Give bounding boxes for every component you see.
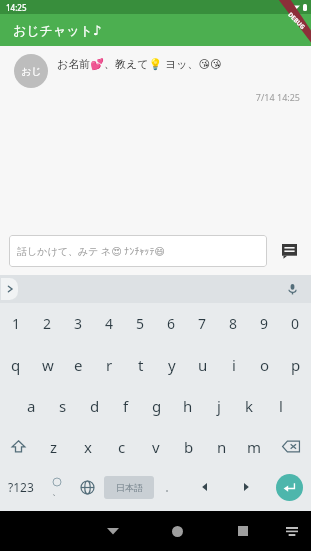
button[interactable]: s	[47, 385, 79, 426]
button[interactable]: Period	[154, 467, 184, 507]
button[interactable]: Keyboard	[275, 511, 309, 551]
staticText: DEBUG	[286, 11, 307, 31]
staticText: o	[260, 355, 270, 375]
button[interactable]: p	[280, 344, 311, 385]
button[interactable]: m	[238, 426, 271, 467]
staticText: 話しかけて、みテ ネ😍 ﾅﾝﾁｬｯﾃ😄	[17, 244, 165, 258]
staticText: 2	[43, 314, 52, 333]
staticText: b	[184, 437, 194, 457]
staticText: d	[90, 396, 100, 416]
button[interactable]: 8	[218, 303, 249, 344]
button[interactable]: x	[71, 426, 105, 467]
button[interactable]: Backspace	[271, 426, 311, 467]
staticText: r	[106, 355, 113, 375]
staticText: y	[168, 355, 176, 375]
staticText: e	[74, 355, 83, 375]
staticText: p	[291, 355, 301, 375]
button[interactable]: Voice input	[283, 280, 301, 298]
button[interactable]: e	[63, 344, 94, 385]
button[interactable]: j	[203, 385, 234, 426]
staticText: 。	[165, 482, 174, 493]
button[interactable]: Back	[80, 511, 145, 551]
staticText: ?123	[8, 479, 34, 495]
staticText: 1	[12, 314, 21, 333]
button[interactable]: l	[265, 385, 296, 426]
button[interactable]: 0	[280, 303, 311, 344]
button[interactable]: o	[249, 344, 280, 385]
button[interactable]: f	[110, 385, 141, 426]
staticText: g	[152, 396, 162, 416]
button[interactable]: 3	[63, 303, 94, 344]
button[interactable]: a	[15, 385, 47, 426]
button[interactable]: 5	[125, 303, 156, 344]
button[interactable]: g	[141, 385, 172, 426]
button[interactable]: w	[32, 344, 63, 385]
staticText: 0	[291, 314, 300, 333]
staticText: 6	[167, 314, 176, 333]
staticText: f	[123, 396, 129, 416]
button[interactable]: Shift	[0, 426, 37, 467]
staticText: 3	[74, 314, 83, 333]
button[interactable]: Send message	[276, 238, 302, 264]
button[interactable]: Home	[145, 511, 210, 551]
button[interactable]: 6	[156, 303, 187, 344]
button[interactable]: 話しかけて、みテ ネ😍 ﾅﾝﾁｬｯﾃ😄	[9, 235, 267, 267]
staticText: u	[198, 355, 208, 375]
staticText: t	[138, 355, 144, 375]
staticText: 5	[136, 314, 145, 333]
staticText: 7/14 14:25	[0, 91, 300, 103]
staticText: m	[247, 437, 262, 457]
button[interactable]: c	[105, 426, 139, 467]
button[interactable]: i	[218, 344, 249, 385]
button[interactable]: Change language	[70, 467, 104, 507]
staticText: お名前💕、教えて💡 ヨッ、😘😘	[57, 56, 222, 71]
button[interactable]: v	[139, 426, 172, 467]
button[interactable]: z	[37, 426, 71, 467]
button[interactable]: h	[172, 385, 203, 426]
staticText: 14:25	[6, 2, 27, 13]
staticText: s	[59, 396, 67, 416]
button[interactable]: 2	[32, 303, 63, 344]
button[interactable]: n	[205, 426, 238, 467]
button[interactable]: Move cursor right	[225, 467, 267, 507]
staticText: 4	[105, 314, 114, 333]
button[interactable]: Move cursor left	[184, 467, 225, 507]
staticText: 、	[52, 486, 61, 497]
staticText: a	[27, 396, 36, 416]
staticText: w	[42, 355, 54, 375]
button[interactable]: 1	[0, 303, 32, 344]
button[interactable]: 4	[94, 303, 125, 344]
staticText: x	[84, 437, 92, 457]
button[interactable]: t	[125, 344, 156, 385]
button[interactable]: Enter	[267, 467, 311, 507]
staticText: z	[50, 437, 58, 457]
button[interactable]: k	[234, 385, 265, 426]
staticText: 8	[229, 314, 238, 333]
staticText: h	[183, 396, 193, 416]
staticText: c	[118, 437, 126, 457]
button[interactable]: Emoji and comma	[42, 467, 70, 507]
button[interactable]: d	[79, 385, 110, 426]
button[interactable]: 7	[187, 303, 218, 344]
button[interactable]: Expand suggestions	[1, 278, 18, 300]
button[interactable]: Recent apps	[210, 511, 275, 551]
staticText: n	[217, 437, 227, 457]
button[interactable]: u	[187, 344, 218, 385]
staticText: おじチャット♪	[13, 22, 102, 38]
button[interactable]: 日本語	[104, 476, 154, 499]
button[interactable]: 9	[249, 303, 280, 344]
staticText: q	[11, 355, 21, 375]
staticText: i	[232, 355, 236, 375]
staticText: 7	[198, 314, 207, 333]
button[interactable]: q	[0, 344, 32, 385]
staticText: おじ	[21, 65, 42, 78]
button[interactable]: ?123	[0, 467, 42, 507]
staticText: v	[152, 437, 160, 457]
button[interactable]: y	[156, 344, 187, 385]
staticText: 9	[260, 314, 269, 333]
staticText: l	[279, 396, 283, 416]
staticText: j	[217, 396, 221, 416]
button[interactable]: r	[94, 344, 125, 385]
staticText: k	[245, 396, 254, 416]
button[interactable]: b	[172, 426, 205, 467]
